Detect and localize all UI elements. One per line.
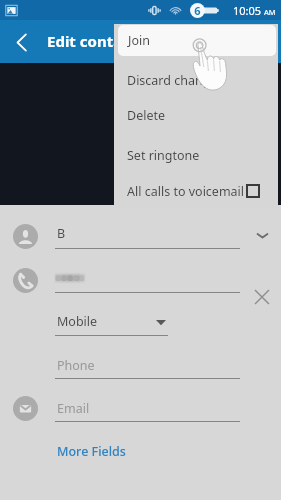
staticText: Join <box>128 32 150 49</box>
button[interactable]: Mobile <box>55 311 168 336</box>
staticText: Phone <box>57 357 95 374</box>
staticText: Email <box>57 400 90 417</box>
button[interactable]: Discard changes <box>114 68 278 92</box>
staticText: Edit contact <box>47 31 137 51</box>
button[interactable]: B <box>55 224 240 249</box>
button[interactable]: Join <box>118 25 276 56</box>
button[interactable]: All calls to voicemail <box>114 179 278 203</box>
staticText: 10:05 <box>233 3 262 18</box>
staticText: Delete <box>127 107 166 124</box>
staticText: More Fields <box>57 443 126 460</box>
button[interactable]: Set ringtone <box>114 143 278 167</box>
button[interactable]: Back <box>0 21 42 63</box>
button[interactable]: Remove phone number <box>252 287 272 307</box>
button[interactable]: More Fields <box>57 443 126 460</box>
staticText: Mobile <box>57 313 98 330</box>
button[interactable] <box>55 267 240 293</box>
staticText: 6 <box>194 3 201 18</box>
staticText: AM <box>264 7 276 17</box>
staticText: All calls to voicemail <box>127 183 245 200</box>
button[interactable]: Delete <box>114 103 278 127</box>
staticText: Discard changes <box>127 72 224 89</box>
staticText: Set ringtone <box>127 147 200 164</box>
button[interactable]: Phone <box>55 355 240 379</box>
staticText: B <box>57 225 66 242</box>
button[interactable]: Email <box>55 398 240 422</box>
button[interactable]: Expand name fields <box>252 225 272 245</box>
